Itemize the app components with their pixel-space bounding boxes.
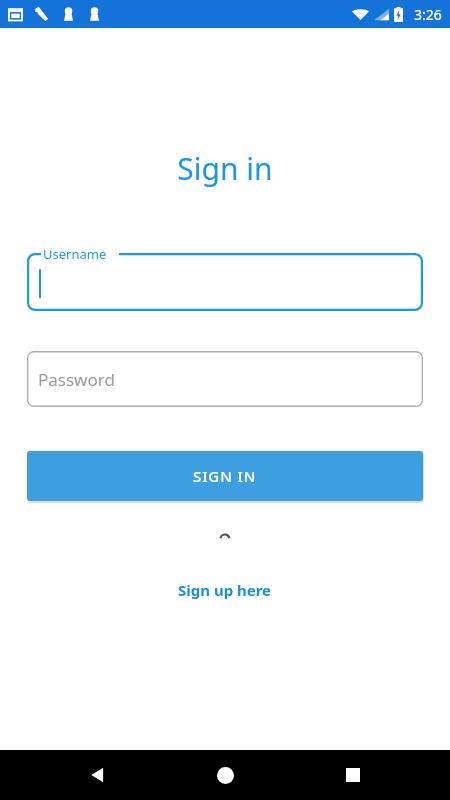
button[interactable]: Back [68, 750, 128, 800]
button[interactable]: Sign up here [166, 576, 284, 604]
button[interactable]: Home [195, 750, 255, 800]
button[interactable] [27, 253, 423, 311]
button[interactable]: SIGN IN [27, 451, 423, 501]
staticText: Username [43, 245, 107, 263]
button[interactable]: Recents [323, 750, 383, 800]
staticText: Sign up here [178, 580, 272, 600]
staticText: Sign in [177, 148, 273, 189]
staticText: 3:26 [414, 5, 442, 24]
staticText: SIGN IN [193, 466, 257, 486]
button[interactable]: Password [27, 351, 423, 407]
staticText: Password [38, 368, 115, 391]
